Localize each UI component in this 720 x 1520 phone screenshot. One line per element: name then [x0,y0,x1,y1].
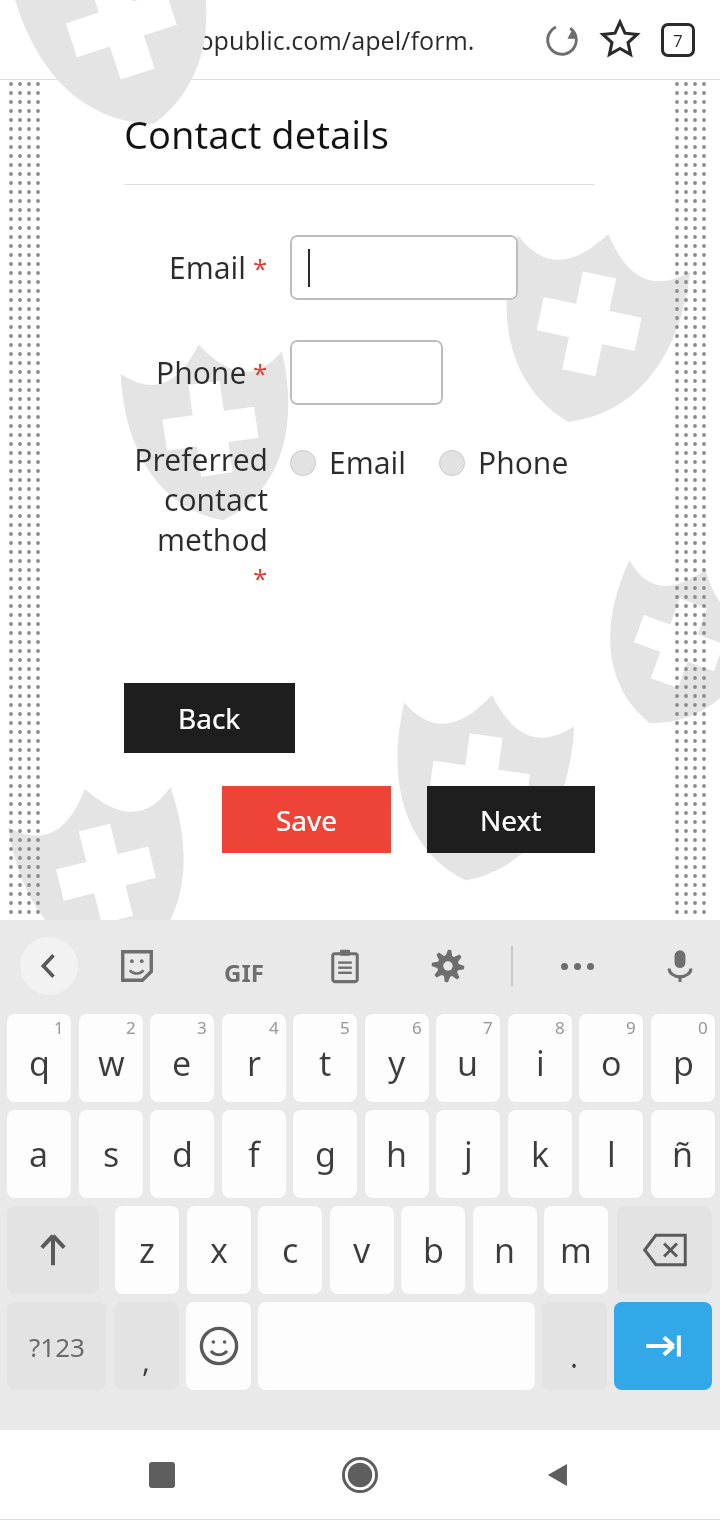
staticText: ?123 [29,1329,85,1364]
button[interactable]: k [508,1110,572,1198]
staticText: Contact details [124,108,390,160]
staticText: , [142,1340,151,1381]
button[interactable]: Tabs, 7 open [654,16,702,64]
button[interactable]: . [542,1302,607,1390]
button[interactable]: 0 [651,1014,715,1102]
staticText: z [139,1227,155,1273]
button[interactable]: 8 [508,1014,572,1102]
staticText: x [210,1227,228,1273]
staticText: 2 [126,1016,136,1039]
staticText: n [494,1227,516,1273]
staticText: 7 [673,29,683,52]
staticText: p [673,1040,694,1086]
staticText: h [386,1131,408,1177]
staticText: f [248,1131,260,1177]
staticText: o [601,1040,622,1086]
staticText: r [247,1040,262,1086]
staticText: 4 [269,1016,279,1039]
staticText: Email [329,442,407,483]
staticText: Next [480,801,542,839]
button[interactable]: f [222,1110,286,1198]
button[interactable]: Bookmark [596,16,644,64]
staticText: 9 [626,1016,636,1039]
button[interactable]: Home [324,1439,396,1511]
button[interactable]: Email [290,442,407,483]
button[interactable]: Emoji [186,1302,251,1390]
staticText: y [388,1040,406,1086]
button[interactable]: Backspace [617,1206,712,1294]
button[interactable]: b [401,1206,465,1294]
staticText: Back [178,699,241,737]
button[interactable]: 2 [79,1014,143,1102]
button[interactable]: More options [553,942,601,990]
button[interactable]: a [7,1110,71,1198]
staticText: . [570,1336,579,1377]
staticText: l [607,1131,616,1177]
button[interactable]: Next [427,786,595,853]
button[interactable]: Stickers [113,942,161,990]
staticText: * [253,355,268,390]
staticText: k [531,1131,550,1177]
button[interactable]: Back [20,937,78,995]
button[interactable]: 1 [7,1014,71,1102]
staticText: w [98,1040,125,1086]
button[interactable]: x [187,1206,251,1294]
button[interactable]: , [114,1302,179,1390]
button[interactable]: z [115,1206,179,1294]
button[interactable]: Save [222,786,391,853]
button[interactable]: Reload [538,16,586,64]
staticText: j [464,1131,473,1177]
staticText: 0 [698,1016,708,1039]
button[interactable]: Settings [424,942,472,990]
button[interactable]: Back [124,683,295,753]
staticText: forms.zohopublic.com/apel/form. [80,23,475,57]
button[interactable]: 5 [293,1014,357,1102]
button[interactable]: ñ [651,1110,715,1198]
staticText: Save [276,801,338,839]
button[interactable]: h [365,1110,429,1198]
button[interactable]: m [544,1206,608,1294]
staticText: q [29,1040,50,1086]
staticText: m [560,1227,592,1273]
staticText: 8 [555,1016,565,1039]
button[interactable]: g [293,1110,357,1198]
button[interactable]: c [258,1206,322,1294]
button[interactable]: Phone [439,442,569,483]
button[interactable]: 6 [365,1014,429,1102]
staticText: Phone [478,442,569,483]
staticText: s [103,1131,120,1177]
staticText: Email [169,247,247,288]
button[interactable]: Next field [614,1302,712,1390]
button[interactable]: Recent apps [126,1439,198,1511]
button[interactable]: Shift [7,1206,99,1294]
button[interactable]: ?123 [7,1302,106,1390]
staticText: g [315,1131,336,1177]
staticText: t [319,1040,332,1086]
button[interactable]: Clipboard [321,942,369,990]
button[interactable]: 7 [436,1014,500,1102]
button[interactable] [290,340,443,405]
button[interactable]: l [579,1110,643,1198]
button[interactable] [290,235,518,300]
button[interactable]: Back [522,1439,594,1511]
button[interactable]: Voice input [656,942,704,990]
staticText: a [29,1131,49,1177]
staticText: d [172,1131,193,1177]
button[interactable]: v [330,1206,394,1294]
button[interactable]: n [473,1206,537,1294]
button[interactable]: 9 [579,1014,643,1102]
staticText: * [253,560,268,595]
button[interactable]: 3 [150,1014,214,1102]
button[interactable]: GIF [214,942,274,1002]
staticText: * [253,250,268,285]
staticText: v [353,1227,371,1273]
button[interactable]: j [436,1110,500,1198]
staticText: b [423,1227,444,1273]
staticText: 6 [412,1016,422,1039]
button[interactable]: s [79,1110,143,1198]
button[interactable]: 4 [222,1014,286,1102]
staticText: u [457,1040,479,1086]
button[interactable]: d [150,1110,214,1198]
staticText: 5 [340,1016,350,1039]
